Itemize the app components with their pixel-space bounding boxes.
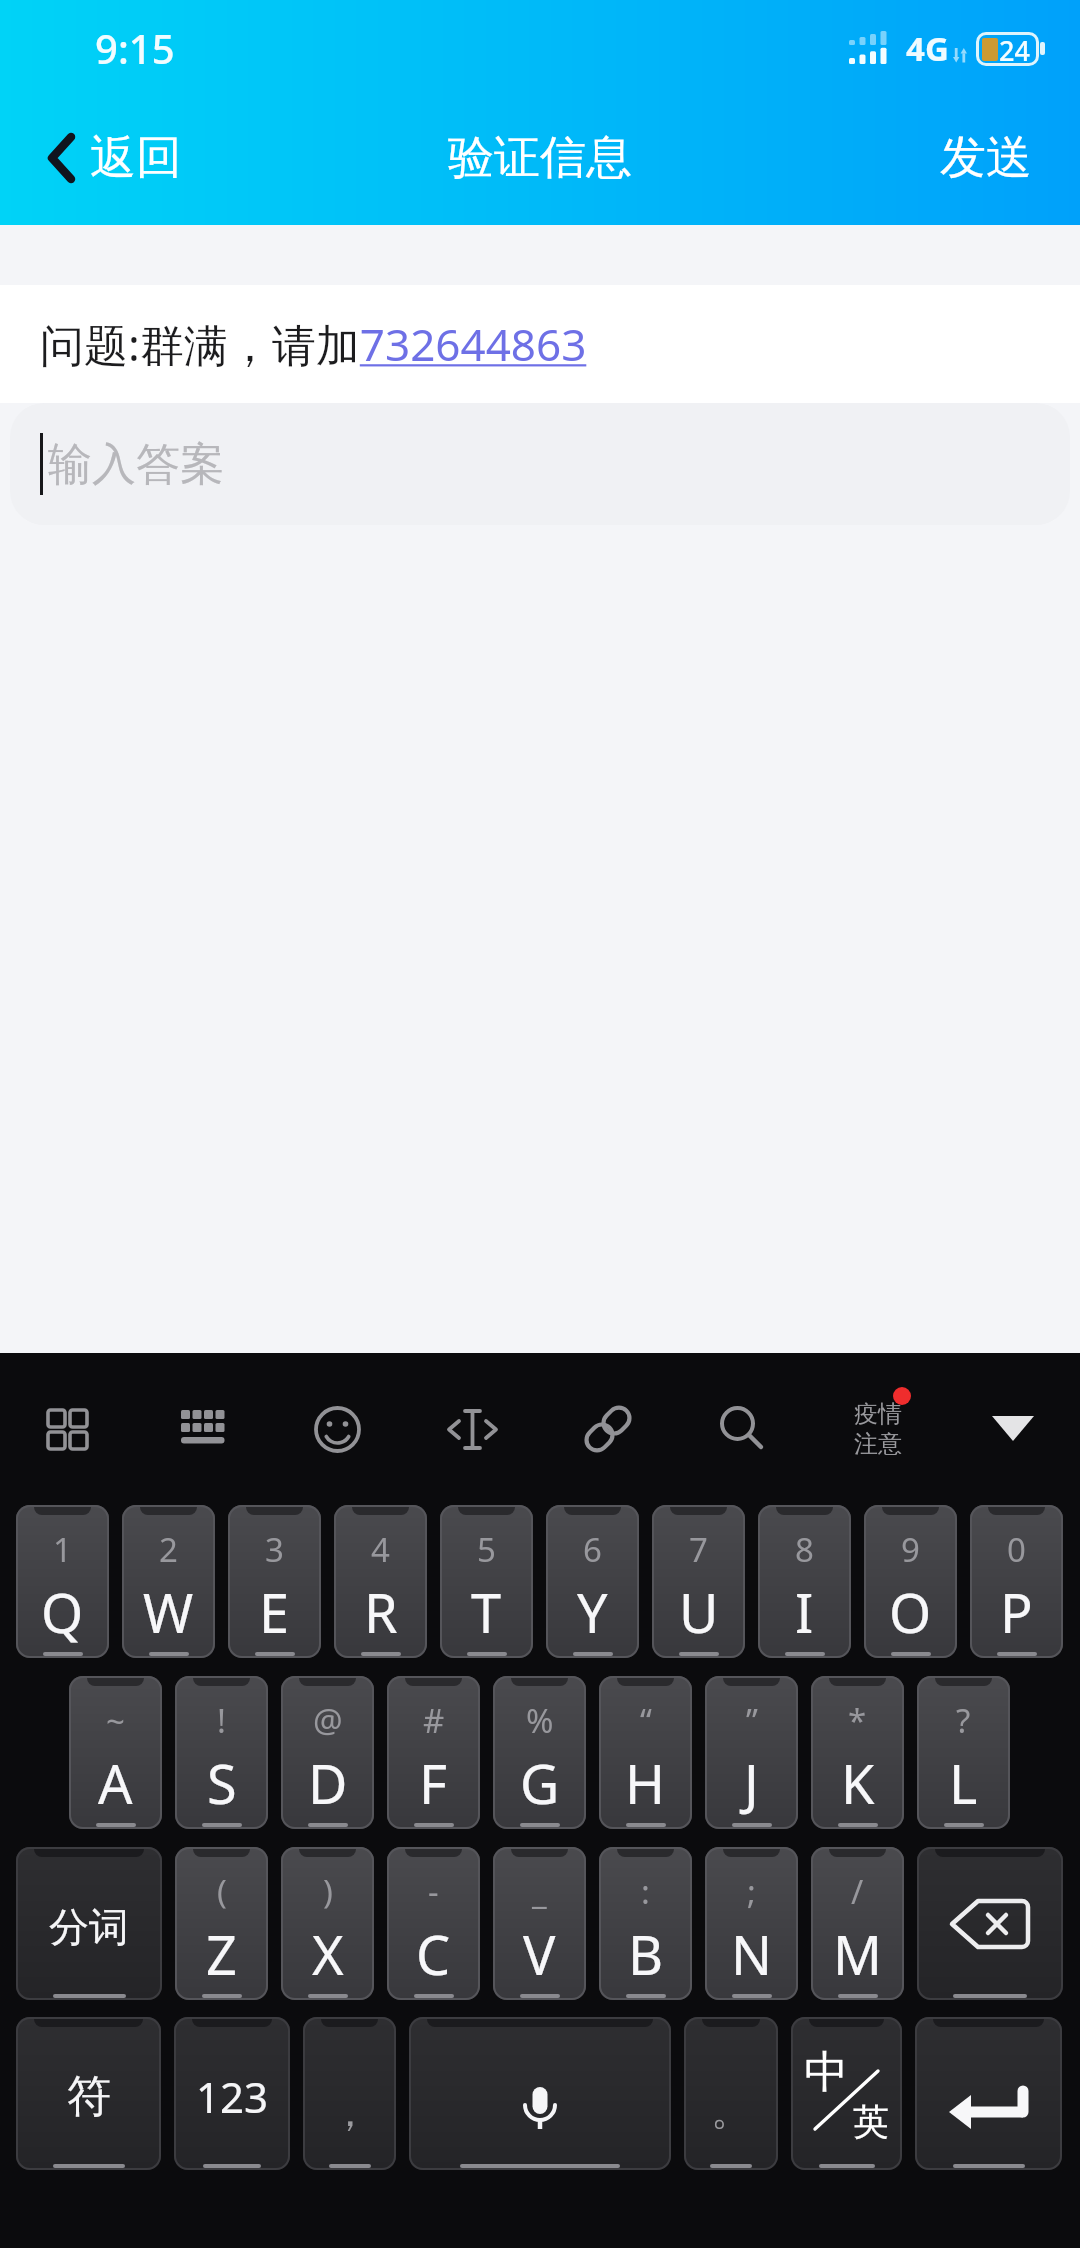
button[interactable] [917,1847,1063,2000]
button[interactable]: ) [281,1847,374,2000]
button[interactable]: 4 [334,1505,427,1658]
button[interactable]: : [599,1847,692,2000]
button[interactable] [0,1353,135,1505]
staticText: ; [747,1869,756,1914]
button[interactable]: 输入答案 [10,403,1070,525]
button[interactable]: / [811,1847,904,2000]
button[interactable]: ; [705,1847,798,2000]
staticText: 符 [67,2069,111,2124]
staticText: Q [41,1575,84,1649]
button[interactable]: 123 [174,2017,290,2170]
staticText: Z [206,1917,237,1991]
staticText: 4 [371,1527,390,1572]
button[interactable]: 1 [16,1505,109,1658]
staticText: 9 [901,1527,920,1572]
staticText: J [744,1746,759,1820]
staticText: 4G [906,26,949,71]
staticText: ( [217,1869,227,1914]
staticText: T [471,1575,502,1649]
staticText: D [308,1746,348,1820]
button[interactable]: ” [705,1676,798,1829]
staticText: U [679,1575,719,1649]
staticText: 2 [159,1527,178,1572]
staticText: W [143,1575,194,1649]
staticText: 6 [583,1527,602,1572]
staticText: ” [746,1698,758,1743]
staticText: A [98,1746,133,1820]
button[interactable]: 分词 [16,1847,162,2000]
staticText: 问题:群满，请加732644863 [40,314,587,374]
staticText: S [207,1746,237,1820]
button[interactable] [675,1353,810,1505]
staticText: : [641,1869,650,1914]
button[interactable]: ( [175,1847,268,2000]
staticText: 返回 [90,129,182,187]
staticText: L [949,1746,978,1820]
button[interactable]: * [811,1676,904,1829]
button[interactable]: 7 [652,1505,745,1658]
button[interactable]: 发送 [940,129,1032,187]
button[interactable]: ? [917,1676,1010,1829]
button[interactable]: ， [303,2017,396,2170]
staticText: ， [330,2087,370,2137]
staticText: # [423,1698,445,1743]
button[interactable] [540,1353,675,1505]
staticText: 0 [1007,1527,1026,1572]
button[interactable]: 2 [122,1505,215,1658]
staticText: C [416,1917,451,1991]
staticText: “ [640,1698,652,1743]
button[interactable] [915,2017,1062,2170]
staticText: ! [217,1698,226,1743]
staticText: 注意 [854,1429,902,1459]
staticText: B [628,1917,664,1991]
staticText: P [1000,1575,1033,1649]
staticText: 分词 [49,1902,129,1952]
button[interactable]: _ [493,1847,586,2000]
button[interactable]: ~ [69,1676,162,1829]
staticText: 疫情 [854,1399,902,1429]
staticText: 。 [711,2085,751,2135]
button[interactable]: 9 [864,1505,957,1658]
button[interactable]: 疫情 [810,1353,945,1505]
staticText: 24 [999,32,1030,66]
button[interactable]: % [493,1676,586,1829]
staticText: V [523,1917,556,1991]
button[interactable]: 5 [440,1505,533,1658]
staticText: M [833,1917,882,1991]
button[interactable]: @ [281,1676,374,1829]
staticText: K [841,1746,875,1820]
button[interactable]: - [387,1847,480,2000]
staticText: ~ [106,1698,125,1743]
staticText: O [889,1575,932,1649]
button[interactable]: “ [599,1676,692,1829]
button[interactable] [409,2017,671,2170]
button[interactable]: 返回 [48,129,182,187]
button[interactable]: 0 [970,1505,1063,1658]
staticText: 输入答案 [48,437,224,492]
staticText: 1 [53,1527,72,1572]
staticText: % [526,1698,554,1743]
staticText: X [312,1917,344,1991]
staticText: N [731,1917,773,1991]
button[interactable]: 6 [546,1505,639,1658]
staticText: 验证信息 [448,129,632,187]
button[interactable] [405,1353,540,1505]
button[interactable] [270,1353,405,1505]
button[interactable]: ! [175,1676,268,1829]
staticText: 7 [689,1527,708,1572]
button[interactable]: 中 [791,2017,902,2170]
staticText: 中 [804,2045,848,2100]
button[interactable] [945,1353,1080,1505]
button[interactable]: 问题:群满，请加732644863 [0,285,1080,403]
button[interactable]: 8 [758,1505,851,1658]
staticText: / [851,1869,864,1914]
button[interactable] [135,1353,270,1505]
button[interactable]: 。 [684,2017,778,2170]
staticText: I [795,1575,814,1649]
staticText: ) [323,1869,333,1914]
button[interactable]: # [387,1676,480,1829]
staticText: @ [313,1698,343,1743]
staticText: 9:15 [95,21,175,75]
button[interactable]: 符 [16,2017,161,2170]
button[interactable]: 3 [228,1505,321,1658]
